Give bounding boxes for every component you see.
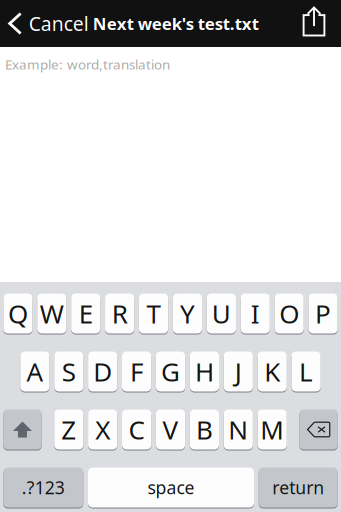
button[interactable]: N xyxy=(224,409,253,450)
button[interactable]: Q xyxy=(3,293,33,334)
staticText: R xyxy=(112,296,128,331)
button[interactable]: return xyxy=(259,467,338,508)
staticText: Z xyxy=(61,412,76,447)
button[interactable]: O xyxy=(275,293,304,334)
staticText: G xyxy=(161,354,180,389)
button[interactable]: X xyxy=(88,409,117,450)
staticText: Example: word,translation xyxy=(5,55,170,73)
staticText: C xyxy=(129,412,145,447)
staticText: U xyxy=(212,296,231,331)
button[interactable]: P xyxy=(308,293,338,334)
button[interactable]: Shift xyxy=(3,409,42,450)
staticText: X xyxy=(95,412,110,447)
button[interactable]: V xyxy=(156,409,185,450)
staticText: return xyxy=(272,475,324,499)
staticText: space xyxy=(147,475,194,499)
staticText: .?123 xyxy=(22,475,65,499)
button[interactable]: Delete xyxy=(299,409,338,450)
staticText: B xyxy=(196,412,213,447)
button[interactable]: Y xyxy=(173,293,202,334)
button[interactable]: U xyxy=(207,293,236,334)
staticText: T xyxy=(147,296,161,331)
button[interactable]: Z xyxy=(54,409,83,450)
staticText: D xyxy=(93,354,112,389)
button[interactable]: B xyxy=(190,409,219,450)
button[interactable]: .?123 xyxy=(3,467,83,508)
button[interactable]: I xyxy=(241,293,270,334)
staticText: O xyxy=(279,296,299,331)
staticText: J xyxy=(235,354,242,389)
staticText: Y xyxy=(180,296,195,331)
staticText: L xyxy=(299,354,313,389)
staticText: Cancel xyxy=(29,10,89,37)
staticText: K xyxy=(264,354,280,389)
button[interactable]: D xyxy=(88,351,117,392)
button[interactable]: C xyxy=(122,409,151,450)
button[interactable]: E xyxy=(71,293,100,334)
staticText: P xyxy=(315,296,331,331)
button[interactable]: H xyxy=(190,351,219,392)
button[interactable]: space xyxy=(88,467,254,508)
button[interactable]: Cancel xyxy=(0,0,93,47)
button[interactable]: A xyxy=(20,351,49,392)
staticText: S xyxy=(62,354,76,389)
staticText: W xyxy=(40,296,64,331)
staticText: V xyxy=(162,412,178,447)
staticText: Next week's test.txt xyxy=(93,12,259,35)
staticText: A xyxy=(26,354,43,389)
button[interactable]: T xyxy=(139,293,168,334)
button[interactable]: M xyxy=(258,409,287,450)
button[interactable]: J xyxy=(224,351,253,392)
button[interactable]: L xyxy=(291,351,321,392)
staticText: E xyxy=(79,296,93,331)
staticText: M xyxy=(260,412,284,447)
button[interactable]: K xyxy=(258,351,287,392)
staticText: F xyxy=(130,354,143,389)
staticText: I xyxy=(251,296,260,331)
button[interactable]: S xyxy=(54,351,83,392)
button[interactable]: G xyxy=(156,351,185,392)
button[interactable]: W xyxy=(37,293,66,334)
staticText: N xyxy=(228,412,248,447)
button[interactable]: F xyxy=(122,351,151,392)
staticText: Q xyxy=(8,296,28,331)
button[interactable]: R xyxy=(105,293,134,334)
staticText: H xyxy=(195,354,214,389)
button[interactable]: Share xyxy=(295,0,333,47)
